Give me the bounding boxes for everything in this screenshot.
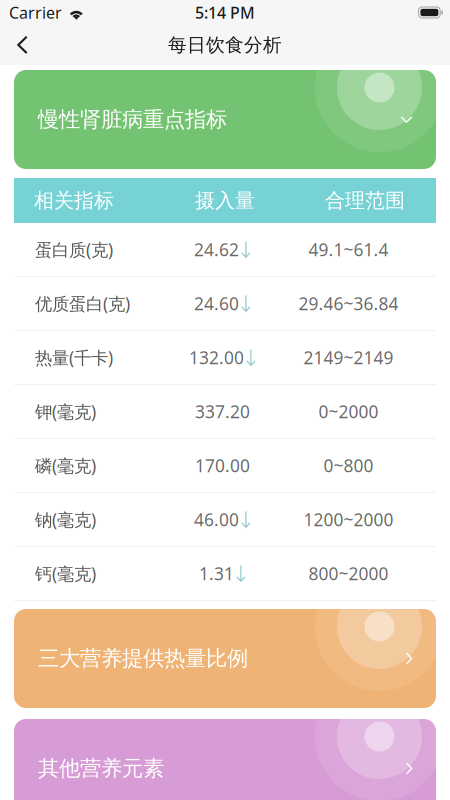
staticText: 其他营养元素 <box>38 755 164 782</box>
button[interactable]: Back <box>0 25 45 65</box>
staticText: 1200~2000 <box>303 508 393 531</box>
staticText: 46.00 <box>194 508 239 531</box>
staticText: 49.1~61.4 <box>308 238 388 261</box>
button[interactable]: 其他营养元素 <box>14 719 436 800</box>
staticText: 合理范围 <box>325 188 405 213</box>
staticText: 优质蛋白(克) <box>35 292 130 315</box>
staticText: 蛋白质(克) <box>35 238 113 261</box>
staticText: 337.20 <box>195 400 250 423</box>
staticText: 慢性肾脏病重点指标 <box>38 106 227 133</box>
staticText: 1.31 <box>199 562 234 585</box>
staticText: 29.46~36.84 <box>298 292 398 315</box>
staticText: 钙(毫克) <box>35 562 96 585</box>
button[interactable]: 三大营养提供热量比例 <box>14 609 436 708</box>
staticText: 0~800 <box>323 454 373 477</box>
staticText: 热量(千卡) <box>35 346 113 369</box>
staticText: 0~2000 <box>318 400 378 423</box>
staticText: 相关指标 <box>34 188 114 213</box>
staticText: 钠(毫克) <box>35 508 96 531</box>
staticText: 24.60 <box>194 292 239 315</box>
staticText: 磷(毫克) <box>35 454 96 477</box>
staticText: 每日饮食分析 <box>168 33 282 56</box>
staticText: 170.00 <box>195 454 250 477</box>
staticText: 24.62 <box>194 238 239 261</box>
staticText: 摄入量 <box>195 188 255 213</box>
staticText: 132.00 <box>189 346 244 369</box>
staticText: 三大营养提供热量比例 <box>38 645 248 672</box>
staticText: Carrier <box>9 2 62 23</box>
staticText: 5:14 PM <box>195 2 255 23</box>
staticText: 800~2000 <box>308 562 388 585</box>
staticText: 2149~2149 <box>303 346 393 369</box>
button[interactable]: 慢性肾脏病重点指标 <box>14 70 436 169</box>
staticText: 钾(毫克) <box>35 400 96 423</box>
